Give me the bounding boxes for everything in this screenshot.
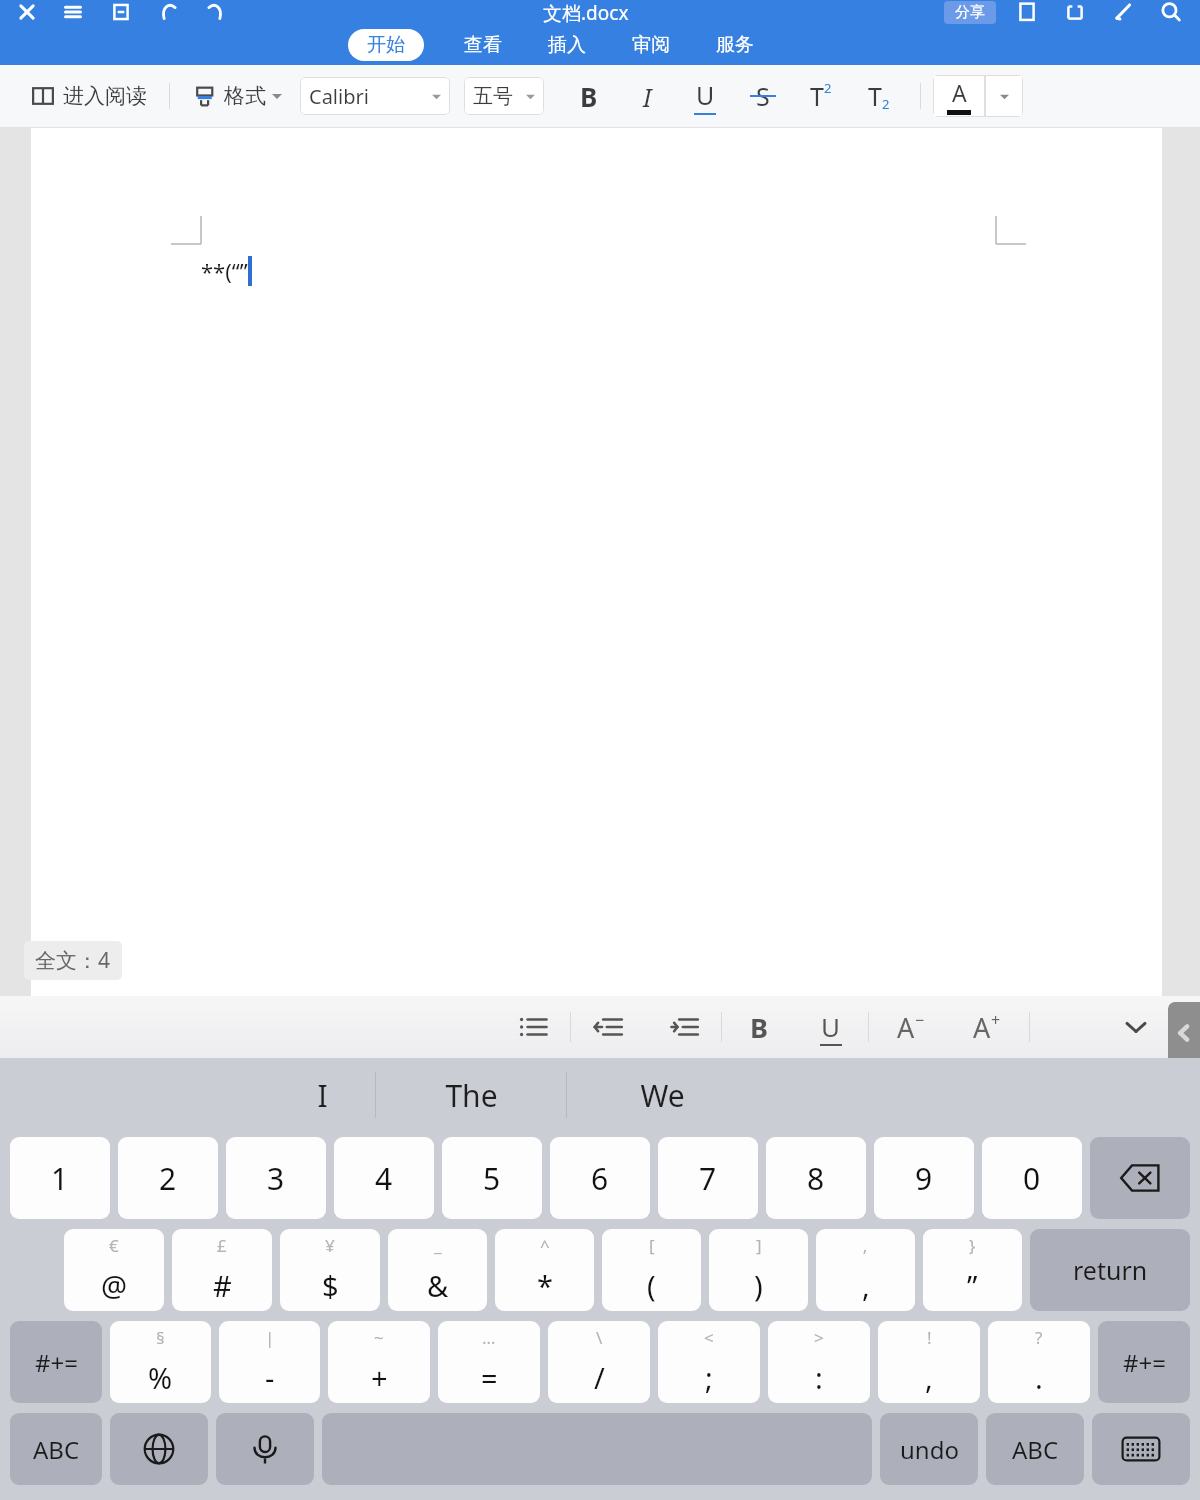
button[interactable]: Decrease font size xyxy=(885,1001,937,1053)
button[interactable]: Pen xyxy=(1110,0,1136,24)
button[interactable]: 3 xyxy=(226,1137,326,1219)
button[interactable]: 1 xyxy=(10,1137,110,1219)
button[interactable]: 开始 xyxy=(348,29,424,61)
staticText: A xyxy=(897,1009,915,1046)
staticText: ABC xyxy=(33,1433,80,1466)
button[interactable]: 服务 xyxy=(712,29,758,61)
button[interactable]: 6 xyxy=(550,1137,650,1219)
button[interactable]: 9 xyxy=(874,1137,974,1219)
button[interactable]: Page count xyxy=(1014,0,1040,24)
button[interactable]: _ xyxy=(388,1229,487,1311)
button[interactable]: Save xyxy=(108,0,134,24)
button[interactable]: 查看 xyxy=(460,29,506,61)
button[interactable]: £ xyxy=(172,1229,272,1311)
button[interactable]: More colors xyxy=(985,75,1023,117)
button[interactable]: 审阅 xyxy=(628,29,674,61)
button[interactable]: [ xyxy=(602,1229,701,1311)
button[interactable]: Change language xyxy=(110,1413,208,1485)
button[interactable]: Backspace xyxy=(1090,1137,1190,1219)
button[interactable]: | xyxy=(219,1321,320,1403)
button[interactable]: ! xyxy=(878,1321,980,1403)
staticText: , xyxy=(925,1358,933,1397)
staticText: 开始 xyxy=(367,33,405,57)
button[interactable]: 格式 xyxy=(192,83,282,109)
button[interactable]: } xyxy=(923,1229,1022,1311)
button[interactable]: 0 xyxy=(982,1137,1082,1219)
button[interactable]: > xyxy=(768,1321,870,1403)
button[interactable]: Increase font size xyxy=(961,1001,1013,1053)
button[interactable]: Font color xyxy=(933,75,985,117)
button[interactable]: Search xyxy=(1158,0,1184,24)
button[interactable]: ABC xyxy=(10,1413,102,1485)
staticText: U xyxy=(696,78,715,112)
button[interactable]: We xyxy=(567,1058,757,1132)
button[interactable]: Strikethrough xyxy=(734,74,792,118)
button[interactable]: 五号 xyxy=(464,77,544,115)
staticText: + xyxy=(991,1009,1001,1031)
button[interactable]: 进入阅读 xyxy=(30,83,147,109)
button[interactable]: Undo xyxy=(156,0,182,24)
button[interactable]: ‚ xyxy=(816,1229,915,1311)
button[interactable]: The xyxy=(376,1058,566,1132)
button[interactable]: I xyxy=(618,74,676,118)
button[interactable]: Select xyxy=(1062,0,1088,24)
button[interactable]: 5 xyxy=(442,1137,542,1219)
button[interactable]: Underline xyxy=(676,74,734,118)
button[interactable]: ¥ xyxy=(280,1229,380,1311)
button[interactable]: Calibri xyxy=(300,77,450,115)
button[interactable]: \ xyxy=(548,1321,650,1403)
button[interactable]: Subscript xyxy=(850,74,908,118)
staticText: 1 xyxy=(51,1158,69,1199)
button[interactable]: 7 xyxy=(658,1137,758,1219)
button[interactable]: 全文：4 xyxy=(24,941,122,980)
button[interactable]: Redo xyxy=(202,0,228,24)
staticText: The xyxy=(445,1075,498,1116)
button[interactable]: Underline xyxy=(808,1004,854,1050)
staticText: 全文：4 xyxy=(35,946,111,975)
button[interactable]: 插入 xyxy=(544,29,590,61)
staticText: 格式 xyxy=(224,83,266,109)
staticText: ~ xyxy=(374,1326,384,1349)
button[interactable]: I xyxy=(270,1058,375,1132)
button[interactable]: B xyxy=(560,74,618,118)
button[interactable]: ? xyxy=(988,1321,1090,1403)
button[interactable]: Decrease indent xyxy=(585,1004,631,1050)
button[interactable]: 分享 xyxy=(944,1,996,24)
button[interactable]: Superscript xyxy=(792,74,850,118)
button[interactable]: … xyxy=(438,1321,540,1403)
staticText: ^ xyxy=(540,1234,550,1257)
staticText: € xyxy=(109,1234,119,1257)
button[interactable]: Hide keyboard xyxy=(1092,1413,1190,1485)
button[interactable]: Expand panel xyxy=(1168,1002,1200,1064)
button[interactable]: ABC xyxy=(986,1413,1084,1485)
button[interactable]: 8 xyxy=(766,1137,866,1219)
staticText: . xyxy=(1035,1358,1043,1397)
button[interactable]: #+= xyxy=(10,1321,102,1403)
button[interactable]: Increase indent xyxy=(661,1004,707,1050)
button[interactable]: Voice input xyxy=(216,1413,314,1485)
button[interactable]: 4 xyxy=(334,1137,434,1219)
staticText: I xyxy=(643,79,652,114)
staticText: T xyxy=(810,79,824,113)
staticText: I xyxy=(317,1075,328,1116)
staticText: 服务 xyxy=(716,33,754,57)
button[interactable]: #+= xyxy=(1098,1321,1190,1403)
button[interactable]: Collapse xyxy=(1108,999,1164,1055)
button[interactable]: Bullet list xyxy=(510,1004,556,1050)
button[interactable]: ~ xyxy=(328,1321,430,1403)
button[interactable]: ] xyxy=(709,1229,808,1311)
staticText: £ xyxy=(217,1234,227,1257)
button[interactable]: ^ xyxy=(495,1229,594,1311)
button[interactable]: Close xyxy=(14,0,40,24)
button[interactable]: return xyxy=(1030,1229,1190,1311)
button[interactable]: undo xyxy=(880,1413,978,1485)
button[interactable]: B xyxy=(736,1004,782,1050)
button[interactable]: € xyxy=(64,1229,164,1311)
staticText: ‚ xyxy=(863,1234,868,1257)
button[interactable]: § xyxy=(110,1321,211,1403)
button[interactable]: 2 xyxy=(118,1137,218,1219)
staticText: @ xyxy=(101,1266,128,1305)
button[interactable]: < xyxy=(658,1321,760,1403)
button[interactable]: Menu xyxy=(60,0,86,24)
